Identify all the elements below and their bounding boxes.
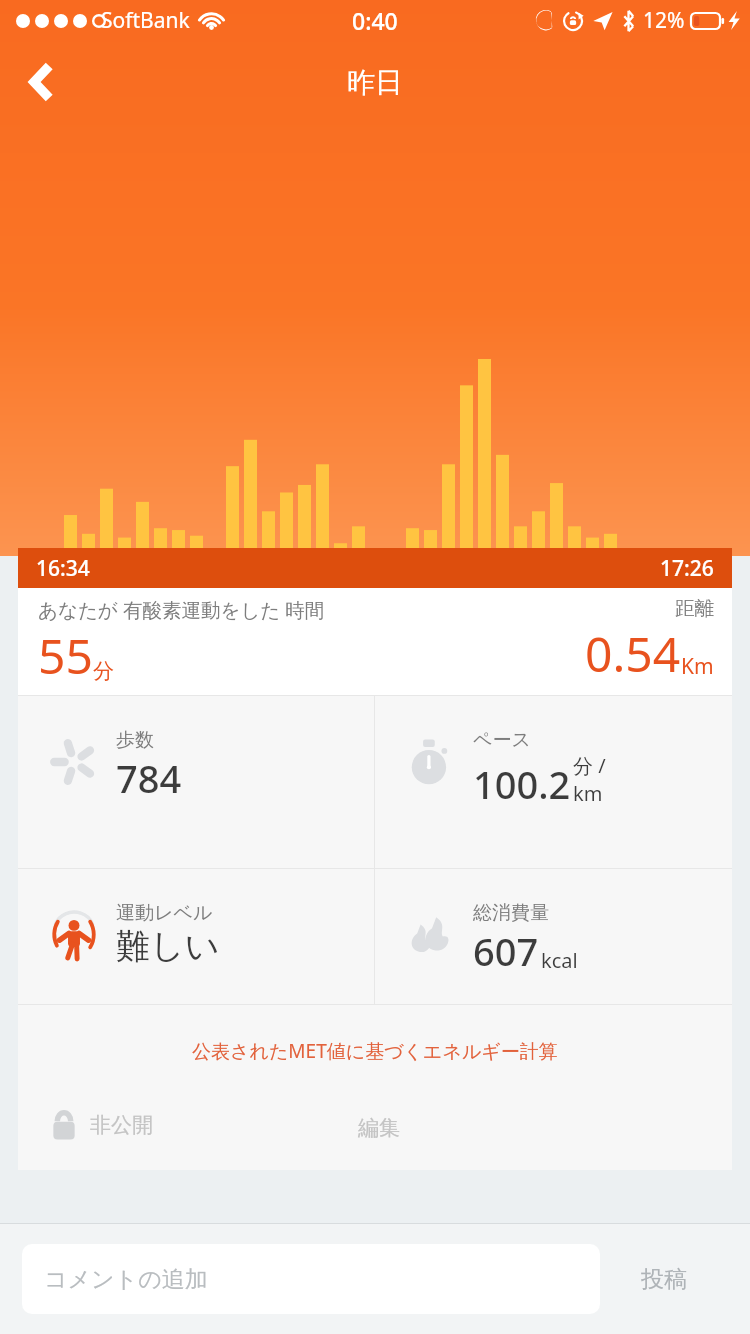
staticText: 分 / km — [573, 752, 606, 807]
staticText: 投稿 — [641, 1265, 687, 1294]
button[interactable]: ペース — [375, 696, 732, 868]
staticText: 55 — [38, 623, 93, 688]
staticText: あなたが 有酸素運動をした 時間 — [38, 596, 325, 623]
staticText: 16:34 — [36, 554, 90, 583]
button[interactable]: 総消費量 — [375, 869, 732, 1004]
staticText: 公表されたMET値に基づくエネルギー計算 — [192, 1038, 558, 1064]
staticText: 非公開 — [90, 1112, 153, 1138]
staticText: 17:26 — [660, 554, 714, 583]
staticText: 607 — [473, 925, 539, 977]
button[interactable]: 投稿 — [600, 1244, 728, 1314]
staticText: 歩数 — [116, 728, 154, 752]
staticText: Km — [681, 652, 714, 681]
button[interactable]: 歩数 — [18, 696, 374, 868]
staticText: SoftBank — [101, 6, 190, 35]
button[interactable]: 非公開 — [46, 1105, 157, 1145]
staticText: 100.2 — [473, 758, 571, 810]
button[interactable]: 運動レベル — [18, 869, 374, 1004]
staticText: 784 — [116, 752, 182, 804]
button[interactable]: コメントの追加 — [22, 1244, 600, 1314]
button[interactable]: 編集 — [358, 1115, 400, 1141]
staticText: 0:40 — [352, 5, 398, 36]
staticText: ペース — [473, 728, 531, 752]
button[interactable]: Back — [6, 46, 78, 118]
staticText: 分 — [93, 658, 114, 684]
staticText: kcal — [541, 947, 578, 974]
staticText: 距離 — [675, 596, 714, 621]
staticText: コメントの追加 — [44, 1265, 208, 1294]
staticText: 総消費量 — [473, 901, 549, 925]
staticText: 0.54 — [585, 621, 681, 686]
staticText: 昨日 — [347, 65, 403, 100]
staticText: 運動レベル — [116, 901, 213, 925]
staticText: 12% — [643, 6, 685, 35]
staticText: 難しい — [116, 925, 220, 968]
